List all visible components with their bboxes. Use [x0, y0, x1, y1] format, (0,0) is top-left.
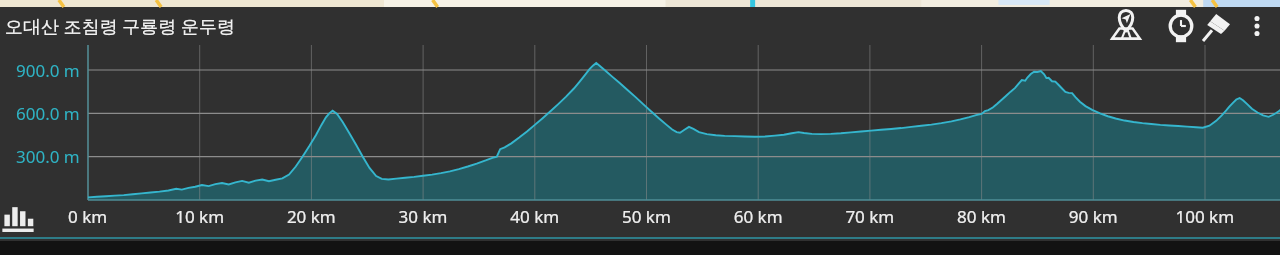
button[interactable]: More options — [1235, 4, 1279, 48]
button[interactable]: Timing — [1159, 4, 1203, 48]
button[interactable]: Show on map — [1104, 4, 1148, 48]
button[interactable]: Route title — [0, 7, 420, 45]
button[interactable]: Elevation chart — [0, 200, 40, 236]
button[interactable]: Elevation profile chart — [88, 45, 1280, 200]
button[interactable]: Pin — [1196, 4, 1240, 48]
